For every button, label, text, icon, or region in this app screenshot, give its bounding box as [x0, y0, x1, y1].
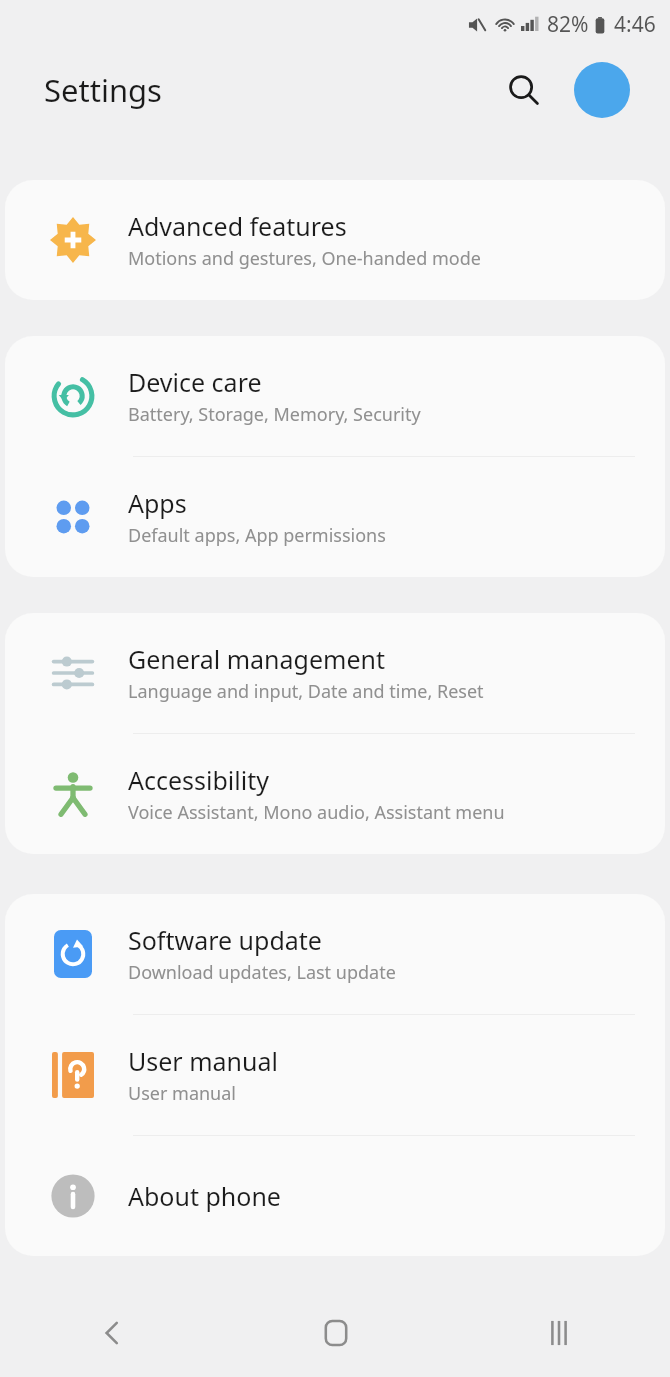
button[interactable]: Recent apps — [447, 1288, 670, 1377]
button[interactable]: Apps — [5, 457, 665, 577]
button[interactable]: Search — [496, 62, 552, 118]
button[interactable]: General management — [5, 613, 665, 733]
staticText: Apps — [128, 486, 187, 520]
button[interactable]: User manual — [5, 1015, 665, 1135]
staticText: Download updates, Last update — [128, 960, 396, 985]
button[interactable]: About phone — [5, 1136, 665, 1256]
button[interactable]: Back — [0, 1288, 224, 1377]
staticText: Software update — [128, 923, 322, 957]
staticText: Device care — [128, 365, 262, 399]
staticText: Voice Assistant, Mono audio, Assistant m… — [128, 800, 505, 825]
staticText: User manual — [128, 1044, 278, 1078]
button[interactable]: Home — [224, 1288, 447, 1377]
staticText: 4:46 — [614, 10, 656, 39]
staticText: Default apps, App permissions — [128, 523, 386, 548]
staticText: General management — [128, 642, 385, 676]
staticText: User manual — [128, 1081, 236, 1106]
button[interactable]: Accessibility — [5, 734, 665, 854]
staticText: Battery, Storage, Memory, Security — [128, 402, 421, 427]
staticText: Advanced features — [128, 209, 347, 243]
button[interactable]: Advanced features — [5, 180, 665, 300]
staticText: Language and input, Date and time, Reset — [128, 679, 484, 704]
button[interactable]: Software update — [5, 894, 665, 1014]
button[interactable]: Device care — [5, 336, 665, 456]
staticText: 82% — [547, 10, 589, 39]
staticText: Motions and gestures, One-handed mode — [128, 246, 481, 271]
staticText: About phone — [128, 1179, 281, 1213]
staticText: Settings — [44, 69, 162, 111]
staticText: Accessibility — [128, 763, 269, 797]
button[interactable]: Account — [574, 62, 630, 118]
